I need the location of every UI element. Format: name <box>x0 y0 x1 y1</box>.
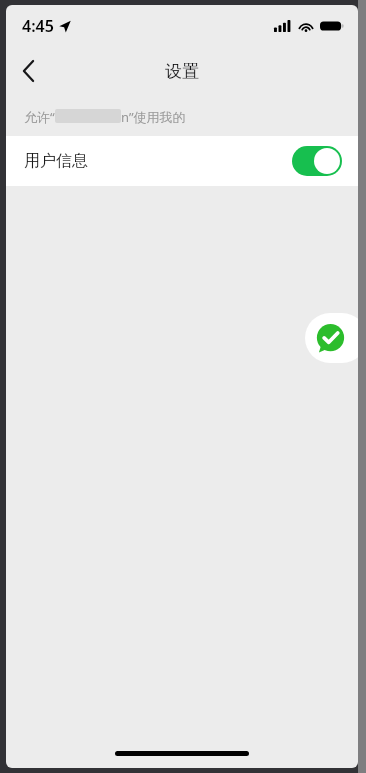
button[interactable]: 返回 <box>6 49 50 93</box>
button[interactable]: 用户信息 <box>6 136 358 186</box>
staticText: 允许“ <box>24 108 55 126</box>
button[interactable]: 悬浮助手 <box>305 313 358 363</box>
staticText: 用户信息 <box>24 151 88 171</box>
staticText: 4:45 <box>22 15 54 37</box>
staticText: n”使用我的 <box>121 108 186 126</box>
button[interactable]: 用户信息开关 <box>292 146 342 176</box>
staticText: 设置 <box>165 61 199 82</box>
